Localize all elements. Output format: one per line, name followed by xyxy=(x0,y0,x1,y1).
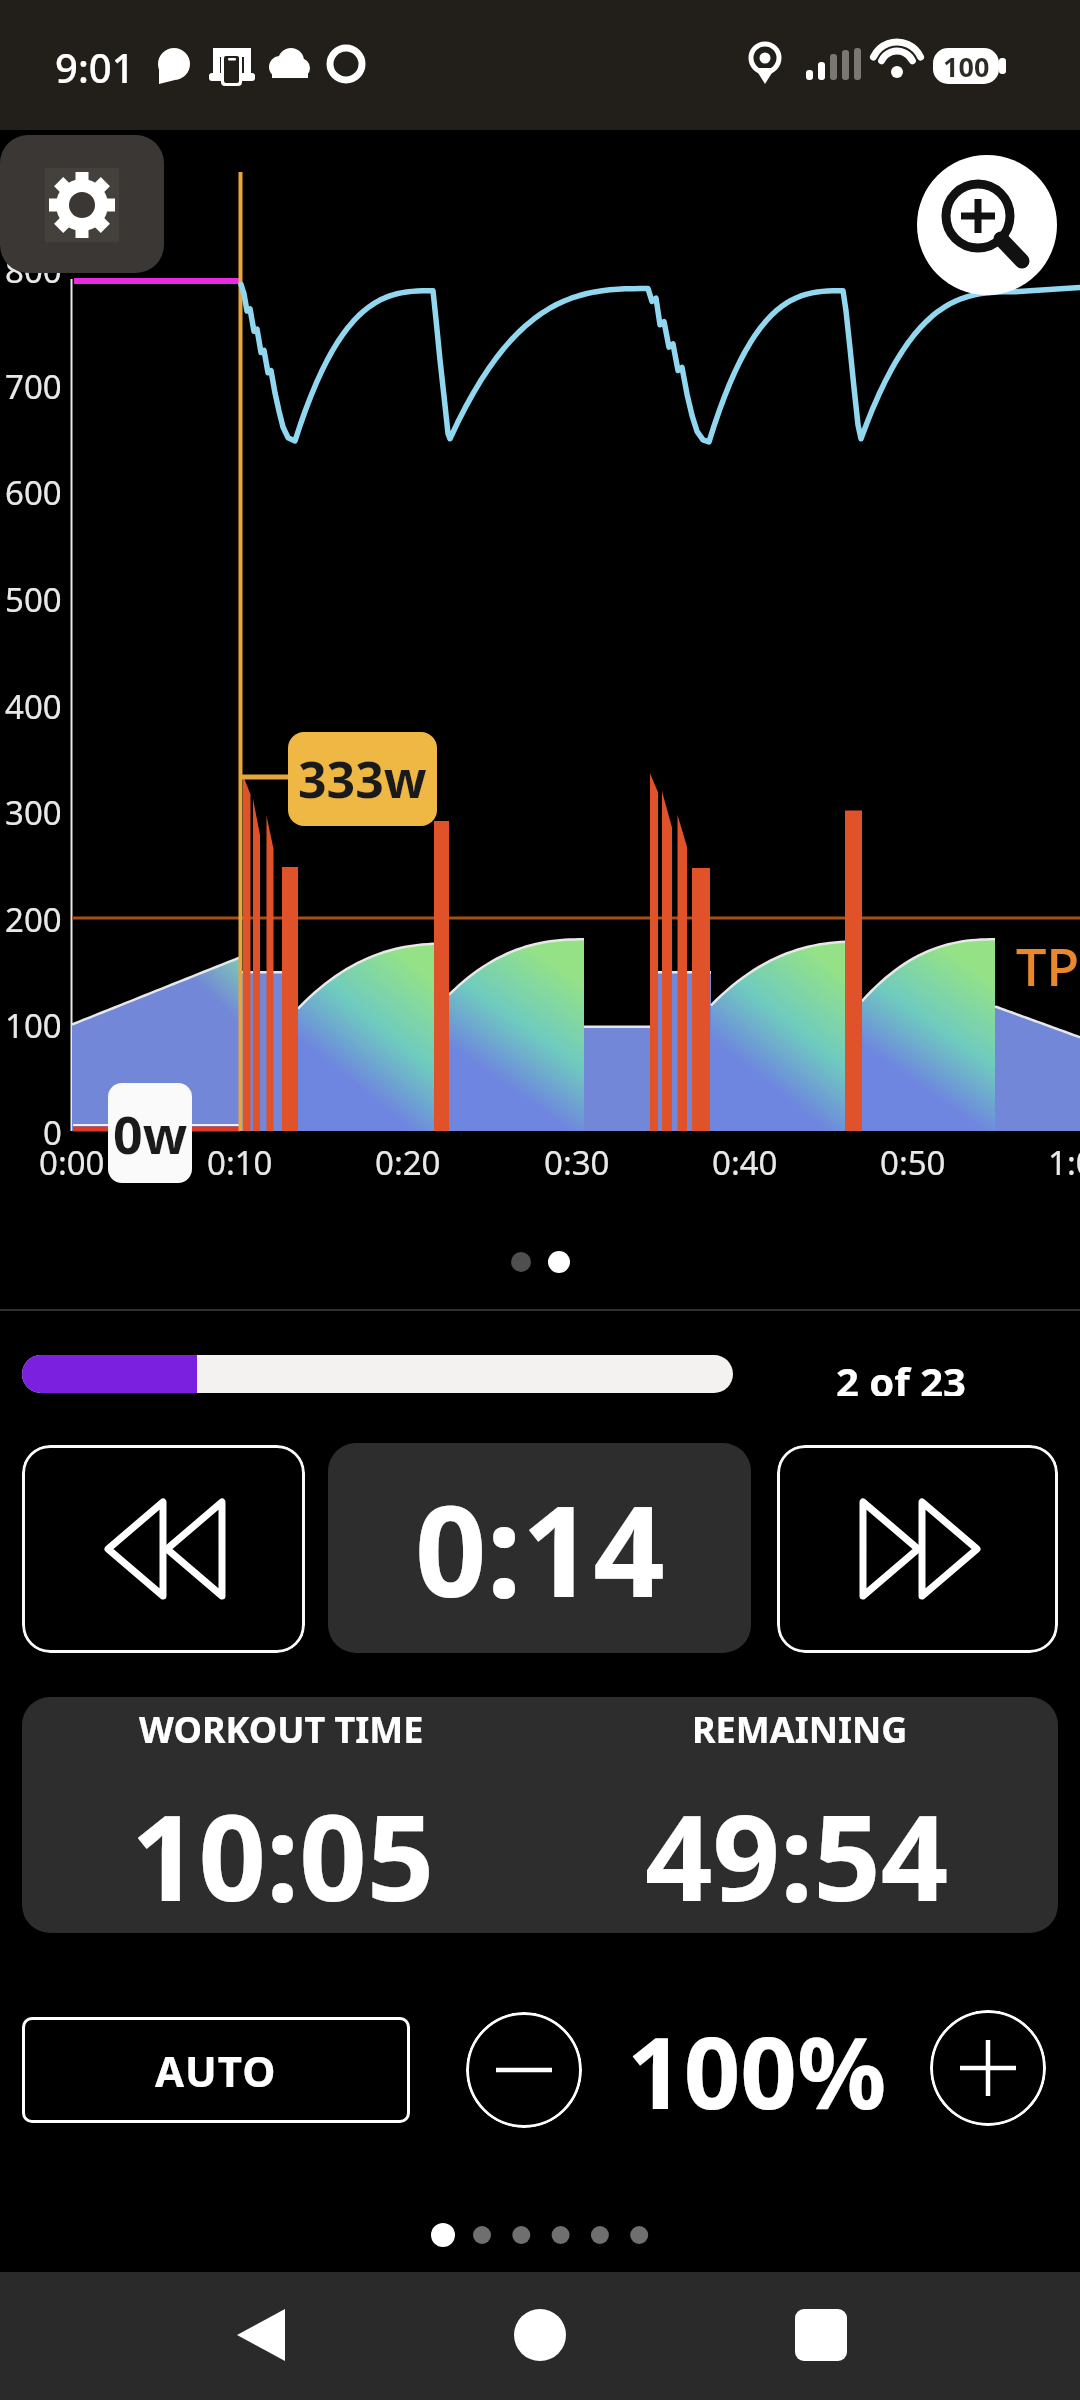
staticText: 0:50 xyxy=(880,1140,946,1180)
staticText: 0:14 xyxy=(415,1463,665,1633)
button[interactable] xyxy=(466,2012,582,2128)
button[interactable] xyxy=(0,135,164,273)
staticText: 1:00 xyxy=(1048,1140,1080,1180)
staticText: 700 xyxy=(5,364,62,406)
staticText: 200 xyxy=(5,897,62,939)
staticText: 0:10 xyxy=(207,1140,273,1180)
button[interactable] xyxy=(777,1445,1058,1653)
staticText: 600 xyxy=(5,470,62,512)
staticText: WORKOUT TIME xyxy=(139,1705,424,1753)
staticText: 100 xyxy=(5,1003,62,1045)
staticText: 100% xyxy=(627,2003,887,2138)
staticText: 400 xyxy=(5,684,62,726)
staticText: AUTO xyxy=(155,2042,277,2099)
staticText: REMAINING xyxy=(692,1705,908,1753)
staticText: 0 xyxy=(43,1110,62,1152)
staticText: 500 xyxy=(5,577,62,619)
staticText: 10:05 xyxy=(131,1775,435,1915)
button[interactable] xyxy=(930,2010,1046,2126)
button[interactable] xyxy=(770,2285,870,2385)
staticText: 49:54 xyxy=(645,1775,949,1915)
staticText: 0:20 xyxy=(375,1140,441,1180)
staticText: 0:40 xyxy=(712,1140,778,1180)
button[interactable]: AUTO xyxy=(22,2017,410,2123)
staticText: 0:30 xyxy=(544,1140,610,1180)
button[interactable] xyxy=(490,2285,590,2385)
button[interactable] xyxy=(917,155,1057,295)
staticText: 800 xyxy=(5,248,62,290)
staticText: 300 xyxy=(5,790,62,832)
button[interactable] xyxy=(212,2285,312,2385)
button[interactable] xyxy=(22,1445,305,1653)
staticText: TP xyxy=(1016,930,1080,986)
staticText: 100 xyxy=(943,48,990,84)
staticText: 333w xyxy=(298,745,427,813)
staticText: 0:00 xyxy=(39,1140,105,1180)
staticText: 0w xyxy=(113,1098,188,1169)
button[interactable]: 0:14 xyxy=(328,1443,751,1653)
staticText: 9:01 xyxy=(55,40,135,90)
staticText: 2 of 23 xyxy=(836,1354,966,1396)
